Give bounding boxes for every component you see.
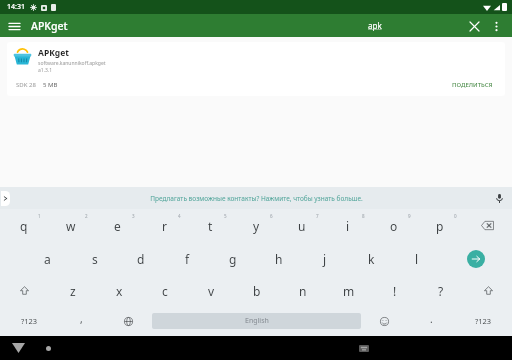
button[interactable]: k [348,242,394,275]
button[interactable]: c [142,275,188,306]
staticText: 9 [408,213,411,219]
staticText: a1.3.1 [38,67,53,74]
button[interactable]: p [417,209,463,242]
button[interactable]: e [94,209,141,242]
staticText: 5 MB [43,81,58,89]
button[interactable]: ?123 [0,306,58,336]
button[interactable]: , [58,306,105,336]
button[interactable]: Enter [440,242,512,275]
button[interactable]: o [371,209,417,242]
button[interactable]: l [394,242,440,275]
staticText: 3 [132,213,135,219]
button[interactable]: g [210,242,256,275]
staticText: English [245,316,269,326]
button[interactable]: a [24,242,71,275]
button[interactable]: More options [486,16,506,36]
staticText: ?123 [475,316,492,326]
button[interactable]: ПОДЕЛИТЬСЯ [449,80,496,90]
staticText: w [66,218,76,234]
button[interactable]: d [118,242,164,275]
button[interactable]: s [71,242,118,275]
button[interactable]: i [325,209,371,242]
button[interactable]: y [233,209,279,242]
staticText: 6 [270,213,273,219]
button[interactable]: ?123 [455,306,512,336]
staticText: k [368,251,375,267]
button[interactable]: Voice input [492,191,506,205]
staticText: 14:31 [7,2,25,12]
staticText: s [92,251,98,267]
staticText: APKget [31,19,68,33]
staticText: SDK 28 [16,81,36,89]
staticText: software.kanunnikoff.apkget [38,60,106,67]
button[interactable]: Expand suggestions [1,191,10,206]
staticText: v [208,283,215,299]
button[interactable]: u [279,209,325,242]
staticText: . [430,312,433,326]
staticText: apk [368,20,382,31]
button[interactable]: Clear search [464,16,484,36]
button[interactable]: h [256,242,302,275]
staticText: Предлагать возможные контакты? Нажмите, … [150,194,363,203]
staticText: h [275,251,283,267]
staticText: ! [393,283,397,299]
button[interactable]: English [152,313,361,329]
staticText: 4 [178,213,181,219]
button[interactable]: . [408,306,455,336]
staticText: 5 [224,213,227,219]
staticText: q [20,218,28,234]
staticText: b [253,283,261,299]
staticText: p [436,218,444,234]
button[interactable]: APKget [7,42,505,96]
staticText: a [44,251,51,267]
button[interactable]: apk [368,20,382,31]
staticText: ? [438,283,444,299]
staticText: f [185,251,190,267]
button[interactable]: Switch keyboard [356,340,372,356]
button[interactable]: m [326,275,372,306]
staticText: z [70,283,76,299]
button[interactable]: Предлагать возможные контакты? Нажмите, … [148,192,365,205]
button[interactable]: z [49,275,96,306]
button[interactable]: t [187,209,233,242]
staticText: 7 [316,213,319,219]
button[interactable]: Home [40,340,56,356]
button[interactable]: Shift [464,275,512,306]
staticText: j [323,251,327,267]
button[interactable]: n [280,275,326,306]
staticText: e [114,218,121,234]
staticText: c [162,283,168,299]
staticText: 1 [38,213,41,219]
button[interactable]: r [141,209,187,242]
staticText: x [116,283,123,299]
staticText: i [346,218,350,234]
button[interactable]: Hide keyboard [8,338,28,358]
staticText: o [390,218,398,234]
button[interactable]: Backspace [463,209,512,242]
button[interactable]: Shift [0,275,49,306]
button[interactable]: Emoji [361,306,408,336]
staticText: , [80,312,83,326]
staticText: d [137,251,145,267]
button[interactable]: q [0,209,47,242]
button[interactable]: ! [372,275,418,306]
staticText: u [298,218,306,234]
staticText: ПОДЕЛИТЬСЯ [452,81,493,89]
button[interactable]: j [302,242,348,275]
staticText: APKget [38,47,69,59]
staticText: r [162,218,167,234]
button[interactable]: x [96,275,142,306]
staticText: 0 [454,213,457,219]
staticText: 8 [362,213,365,219]
staticText: t [208,218,213,234]
button[interactable]: v [188,275,234,306]
staticText: l [415,251,419,267]
button[interactable]: b [234,275,280,306]
button[interactable]: ? [418,275,464,306]
button[interactable]: f [164,242,210,275]
button[interactable]: Open navigation menu [4,16,24,36]
staticText: g [229,251,237,267]
staticText: n [299,283,307,299]
button[interactable]: w [47,209,94,242]
button[interactable]: Change language [105,306,152,336]
